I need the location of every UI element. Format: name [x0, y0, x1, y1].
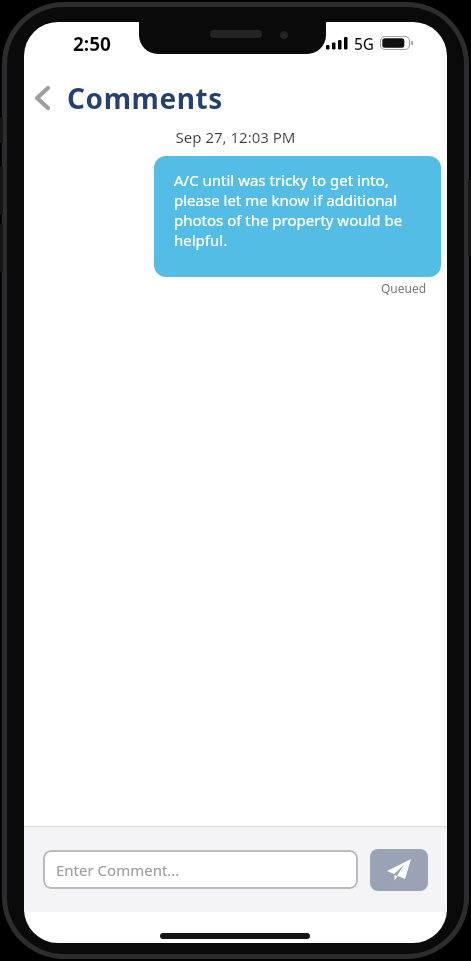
- staticText: Sep 27, 12:03 PM: [24, 127, 447, 147]
- staticText: A/C until was tricky to get into, please…: [174, 170, 403, 250]
- staticText: Enter Comment...: [56, 860, 180, 880]
- staticText: 5G: [354, 33, 375, 54]
- staticText: 2:50: [73, 31, 111, 57]
- staticText: Queued: [381, 280, 427, 296]
- button[interactable]: [370, 849, 428, 891]
- button[interactable]: Enter Comment...: [43, 850, 358, 889]
- staticText: Comments: [67, 79, 224, 117]
- button[interactable]: [33, 86, 51, 110]
- button[interactable]: A/C until was tricky to get into, please…: [154, 156, 441, 277]
